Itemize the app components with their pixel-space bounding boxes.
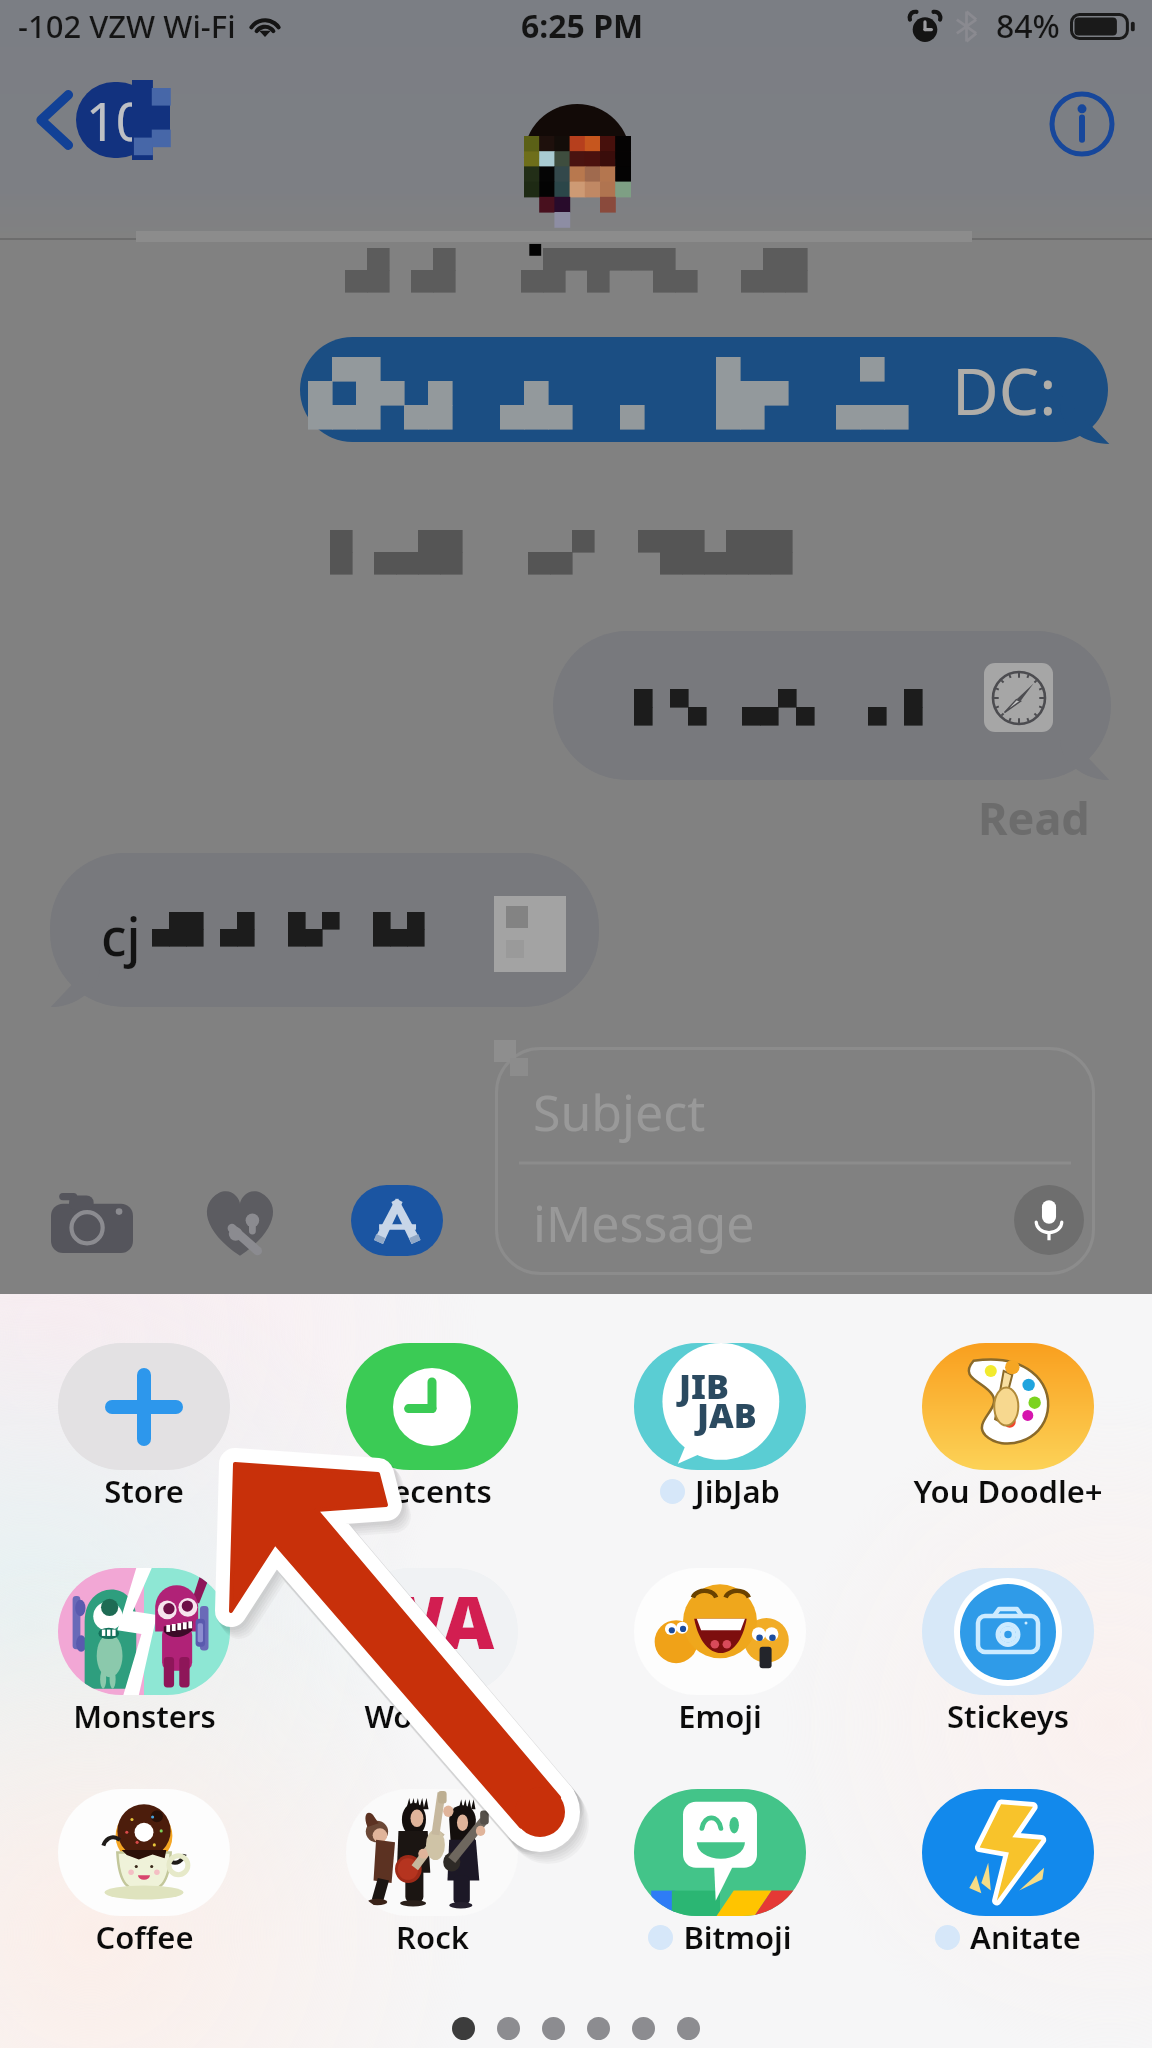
- staticText: JibJab: [695, 1470, 780, 1512]
- staticText: JIB: [679, 1363, 729, 1409]
- staticText: Coffee: [95, 1916, 194, 1958]
- staticText: cj: [101, 900, 141, 971]
- button[interactable]: Page 2: [486, 2006, 531, 2048]
- button[interactable]: Page 6: [666, 2006, 711, 2048]
- staticText: -102 VZW Wi-Fi: [18, 5, 236, 47]
- button[interactable]: WA: [288, 1554, 576, 1758]
- button[interactable]: Dictate: [1014, 1185, 1084, 1255]
- button[interactable]: Digital Touch: [200, 1187, 280, 1258]
- staticText: WA: [370, 1572, 495, 1670]
- staticText: 6:25 PM: [521, 4, 644, 48]
- staticText: 84%: [996, 4, 1060, 48]
- button[interactable]: Page 4: [576, 2006, 621, 2048]
- staticText: Bitmoji: [683, 1916, 792, 1958]
- button[interactable]: Conversation details: [1044, 86, 1120, 162]
- button[interactable]: Coffee: [0, 1775, 288, 1979]
- staticText: JAB: [697, 1392, 757, 1438]
- staticText: Rock: [396, 1916, 469, 1958]
- button[interactable]: Store: [0, 1329, 288, 1533]
- button[interactable]: JIB: [576, 1329, 864, 1533]
- staticText: Word Art: [364, 1695, 500, 1737]
- staticText: DC:: [952, 347, 1057, 434]
- staticText: Monsters: [73, 1695, 216, 1737]
- staticText: Store: [104, 1470, 184, 1512]
- staticText: Subject: [533, 1078, 706, 1146]
- staticText: Stickeys: [947, 1695, 1069, 1737]
- button[interactable]: Anitate: [864, 1775, 1152, 1979]
- button[interactable]: Recents: [288, 1329, 576, 1533]
- staticText: Recents: [372, 1470, 492, 1512]
- button[interactable]: Stickeys: [864, 1554, 1152, 1758]
- button[interactable]: Bitmoji: [576, 1775, 864, 1979]
- button[interactable]: Rock: [288, 1775, 576, 1979]
- staticText: 10: [86, 85, 146, 156]
- staticText: iMessage: [533, 1189, 755, 1257]
- button[interactable]: Emoji: [576, 1554, 864, 1758]
- staticText: Anitate: [970, 1916, 1081, 1958]
- button[interactable]: Page 5: [621, 2006, 666, 2048]
- button[interactable]: Monsters: [0, 1554, 288, 1758]
- button[interactable]: App Store: [351, 1185, 443, 1256]
- staticText: You Doodle+: [913, 1470, 1103, 1512]
- button[interactable]: Back to Messages, 10 unread: [24, 76, 184, 176]
- button[interactable]: You Doodle+: [864, 1329, 1152, 1533]
- staticText: Emoji: [678, 1695, 762, 1737]
- button[interactable]: Camera: [51, 1193, 133, 1253]
- button[interactable]: Page 1: [441, 2006, 486, 2048]
- button[interactable]: Page 3: [531, 2006, 576, 2048]
- staticText: Read: [978, 787, 1090, 848]
